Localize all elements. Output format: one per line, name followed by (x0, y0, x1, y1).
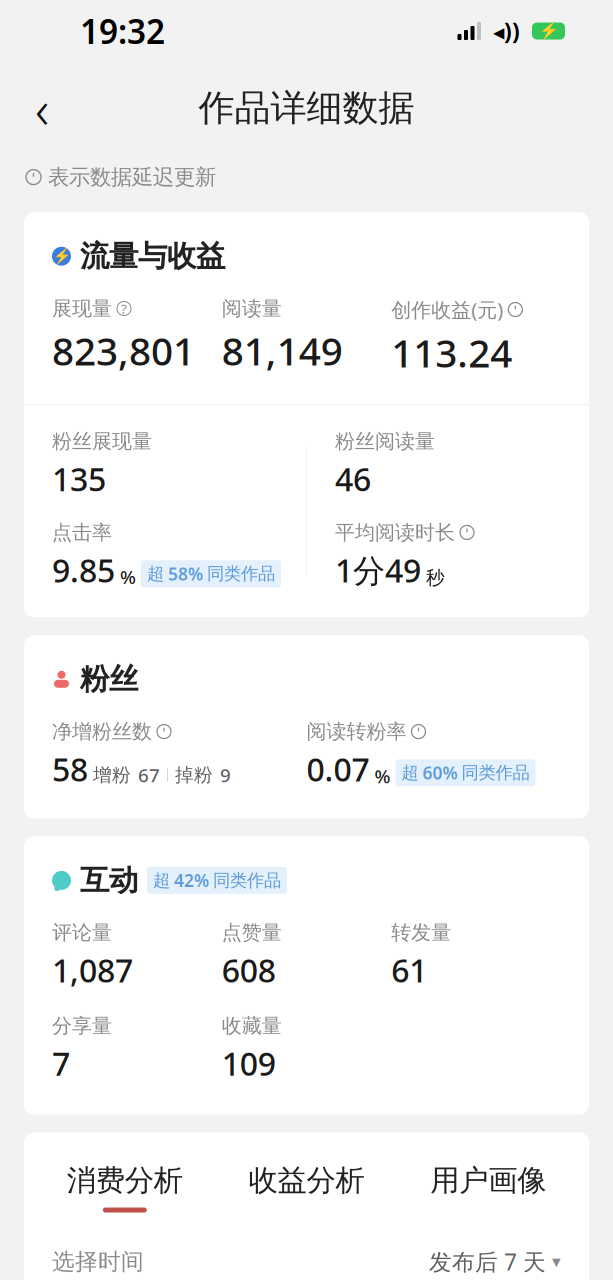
button[interactable]: 发布后 7 天 (429, 1246, 561, 1277)
staticText: 作品详细数据 (198, 86, 414, 130)
staticText: ? (121, 300, 127, 317)
staticText: 粉丝展现量 (52, 429, 152, 454)
staticText: 113.24 (391, 327, 512, 378)
staticText: 用户画像 (430, 1162, 546, 1198)
staticText: 1,087 (52, 949, 133, 991)
staticText: 9.85 (52, 549, 115, 591)
staticText: 同类作品 (461, 762, 529, 783)
staticText: 创作收益(元) (391, 296, 503, 323)
staticText: 互动 (80, 862, 138, 898)
staticText: 46 (335, 458, 371, 500)
staticText: 收藏量 (222, 1013, 282, 1038)
staticText: 81,149 (222, 325, 343, 376)
staticText: 超 (401, 762, 418, 783)
staticText: ⚡ (52, 248, 70, 265)
staticText: 135 (52, 458, 106, 500)
staticText: ▾ (552, 1252, 561, 1271)
staticText: 109 (222, 1042, 276, 1084)
staticText: 42% (174, 869, 209, 892)
staticText: 阅读转粉率 (306, 719, 406, 744)
staticText: 608 (222, 949, 276, 991)
staticText: 转发量 (391, 920, 451, 945)
staticText: 增粉 (93, 763, 131, 786)
staticText: 点击率 (52, 520, 112, 545)
staticText: 平均阅读时长 (335, 520, 455, 545)
staticText: 19:32 (80, 9, 165, 53)
staticText: ⚡ (538, 22, 558, 40)
staticText: 58 (52, 748, 88, 790)
staticText: ‹ (35, 73, 49, 143)
staticText: 61 (391, 949, 427, 991)
staticText: 67 (138, 763, 160, 787)
staticText: 1分49 (335, 549, 421, 591)
staticText: 0.07 (306, 748, 369, 790)
staticText: 点赞量 (222, 920, 282, 945)
button[interactable]: 收益分析 (216, 1162, 397, 1212)
staticText: ◂)) (493, 16, 520, 46)
button[interactable]: 消费分析 (34, 1162, 216, 1212)
staticText: 超 (147, 563, 164, 584)
staticText: 9 (220, 763, 231, 787)
staticText: 流量与收益 (80, 238, 225, 274)
staticText: 60% (422, 761, 457, 784)
staticText: 同类作品 (207, 563, 275, 584)
staticText: 粉丝阅读量 (335, 429, 435, 454)
staticText: % (120, 564, 136, 589)
staticText: 表示数据延迟更新 (48, 164, 216, 190)
staticText: 823,801 (52, 325, 195, 376)
staticText: 掉粉 (175, 763, 213, 786)
staticText: 发布后 7 天 (429, 1246, 546, 1277)
button[interactable]: 用户画像 (397, 1162, 579, 1212)
staticText: 秒 (426, 566, 445, 589)
staticText: 阅读量 (222, 296, 282, 321)
staticText: 消费分析 (67, 1162, 183, 1198)
staticText: 收益分析 (248, 1162, 364, 1198)
staticText: 净增粉丝数 (52, 719, 152, 744)
staticText: 选择时间 (52, 1248, 144, 1275)
staticText: 分享量 (52, 1013, 112, 1038)
button[interactable]: Back (14, 80, 70, 136)
staticText: 超 (153, 870, 170, 891)
staticText: 粉丝 (80, 661, 138, 697)
staticText: 评论量 (52, 920, 112, 945)
staticText: 7 (52, 1042, 70, 1084)
staticText: 同类作品 (213, 870, 281, 891)
staticText: 展现量 (52, 296, 112, 321)
staticText: 58% (168, 562, 203, 585)
staticText: % (374, 764, 390, 788)
